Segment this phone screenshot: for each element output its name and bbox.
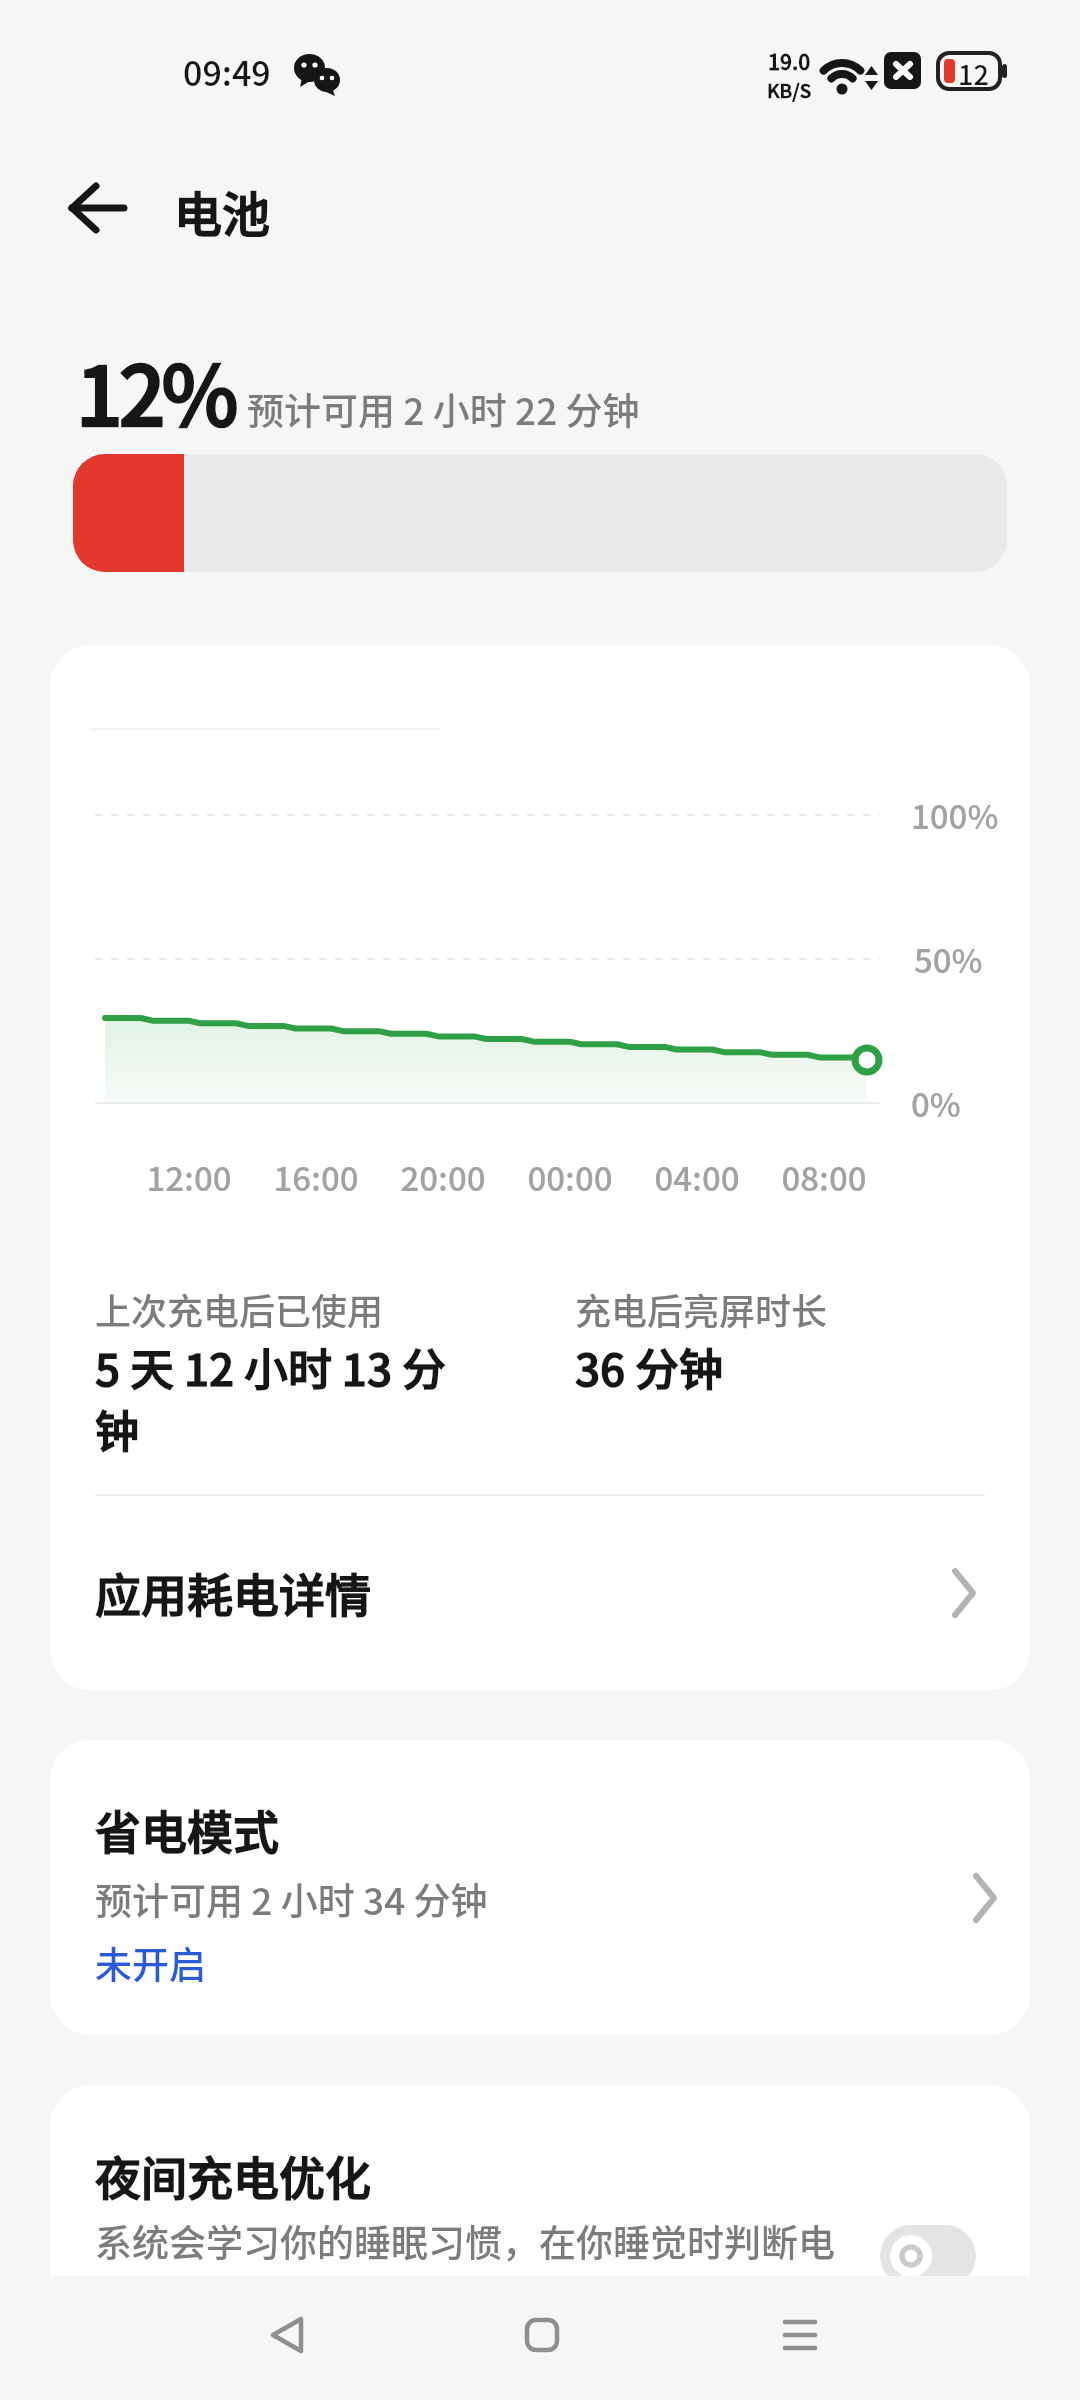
staticText: 09:49 [183,47,271,96]
staticText: 12:00 [139,1153,239,1201]
staticText: 预计可用 2 小时 22 分钟 [247,382,640,436]
staticText: 未开启 [95,1936,206,1990]
staticText: 20:00 [393,1153,493,1201]
staticText: 00:00 [520,1153,620,1201]
staticText: KB/S [767,76,812,104]
button[interactable] [740,2300,860,2370]
staticText: 系统会学习你的睡眠习惯，在你睡觉时判断电 [95,2214,835,2268]
staticText: 16:00 [266,1153,366,1201]
button[interactable] [227,2300,347,2370]
staticText: 100% [911,791,999,839]
staticText: 充电后亮屏时长 [575,1283,828,1335]
staticText: 预计可用 2 小时 34 分钟 [95,1872,488,1926]
staticText: 0% [911,1079,961,1127]
staticText: 12 [958,54,989,93]
staticText: 上次充电后已使用 [95,1283,384,1335]
button[interactable]: 应用耗电详情 [50,1525,1030,1660]
staticText: 夜间充电优化 [95,2142,371,2209]
staticText: 省电模式 [95,1796,279,1863]
staticText: 应用耗电详情 [95,1559,371,1626]
staticText: 08:00 [774,1153,874,1201]
button[interactable] [68,182,128,234]
staticText: 50% [914,935,983,983]
button[interactable]: 省电模式 [50,1740,1030,2035]
staticText: 04:00 [647,1153,747,1201]
staticText: 19.0 [768,46,811,76]
staticText: 5 天 12 小时 13 分钟 [95,1335,465,1460]
staticText: 36 分钟 [575,1335,724,1399]
staticText: 电池 [174,176,271,246]
button[interactable]: 夜间充电优化 [50,2085,1030,2276]
button[interactable] [482,2300,602,2370]
staticText: 12% [76,331,235,450]
